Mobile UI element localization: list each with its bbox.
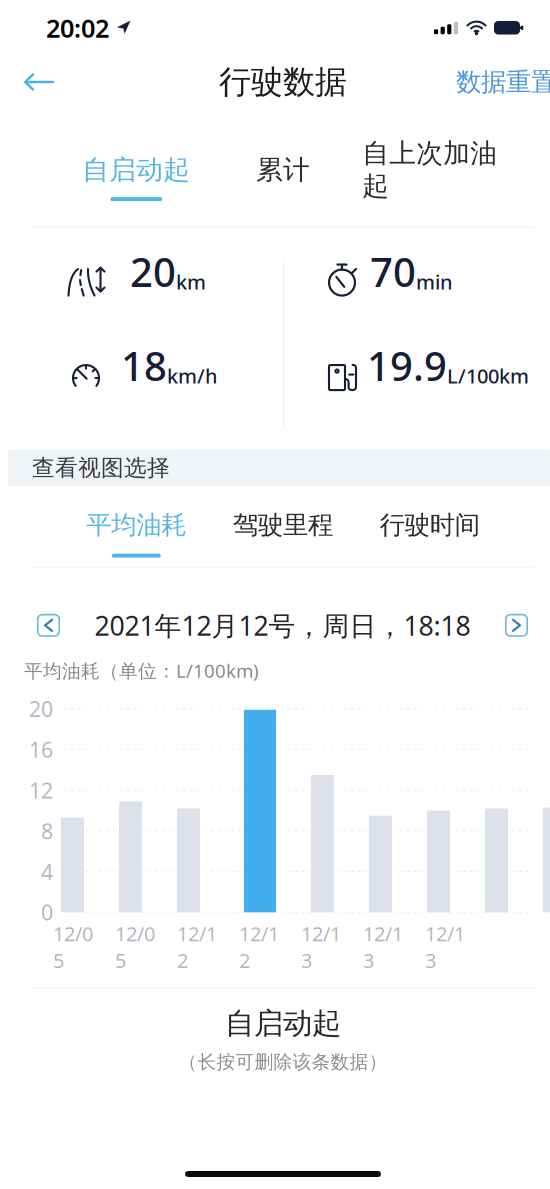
staticText: 行驶时间 — [380, 509, 480, 541]
button[interactable]: 平均油耗 — [63, 509, 210, 558]
staticText: 12/13 — [363, 920, 403, 973]
button[interactable]: 上一条 — [37, 614, 60, 637]
staticText: 累计 — [256, 153, 310, 186]
button[interactable]: 行驶时间 — [356, 509, 503, 558]
staticText: 12/13 — [301, 920, 341, 973]
staticText: km — [176, 268, 206, 295]
staticText: 2021年12月12号，周日，18:18 — [94, 608, 470, 643]
staticText: 20 — [130, 245, 176, 298]
staticText: 12/12 — [239, 920, 279, 973]
button[interactable]: 下一条 — [505, 614, 528, 637]
button[interactable]: 返回 — [8, 60, 70, 104]
button[interactable]: 累计 — [210, 153, 356, 201]
staticText: km/h — [167, 362, 218, 389]
staticText: 8 — [41, 817, 53, 845]
staticText: 12/05 — [53, 920, 93, 973]
staticText: 20 — [29, 695, 53, 723]
staticText: 0 — [41, 898, 53, 926]
staticText: 数据重置 — [456, 66, 550, 97]
staticText: 18 — [121, 339, 167, 392]
staticText: 70 — [370, 245, 416, 298]
button[interactable]: 自启动起 — [63, 153, 210, 201]
button[interactable]: 驾驶里程 — [210, 509, 356, 558]
staticText: 12/13 — [425, 920, 465, 973]
staticText: 自启动起 — [82, 153, 190, 186]
staticText: 查看视图选择 — [32, 454, 170, 482]
staticText: 行驶数据 — [219, 62, 347, 102]
button[interactable]: 数据重置 — [456, 60, 550, 104]
staticText: 平均油耗 — [86, 509, 186, 541]
staticText: 12 — [29, 776, 53, 804]
staticText: 平均油耗（单位：L/100km) — [24, 658, 259, 683]
staticText: L/100km — [447, 362, 529, 389]
staticText: min — [416, 268, 453, 295]
staticText: 16 — [29, 735, 53, 764]
staticText: 12/12 — [177, 920, 217, 973]
staticText: 自启动起 — [225, 1005, 341, 1041]
staticText: （长按可删除该条数据） — [178, 1050, 387, 1073]
staticText: 12/05 — [115, 920, 155, 973]
staticText: 驾驶里程 — [233, 509, 333, 541]
staticText: 自上次加油起 — [362, 137, 497, 202]
button[interactable]: 自上次加油起 — [356, 137, 503, 217]
staticText: 19.9 — [367, 339, 447, 392]
staticText: 20:02 — [46, 11, 109, 45]
staticText: 4 — [41, 857, 53, 886]
